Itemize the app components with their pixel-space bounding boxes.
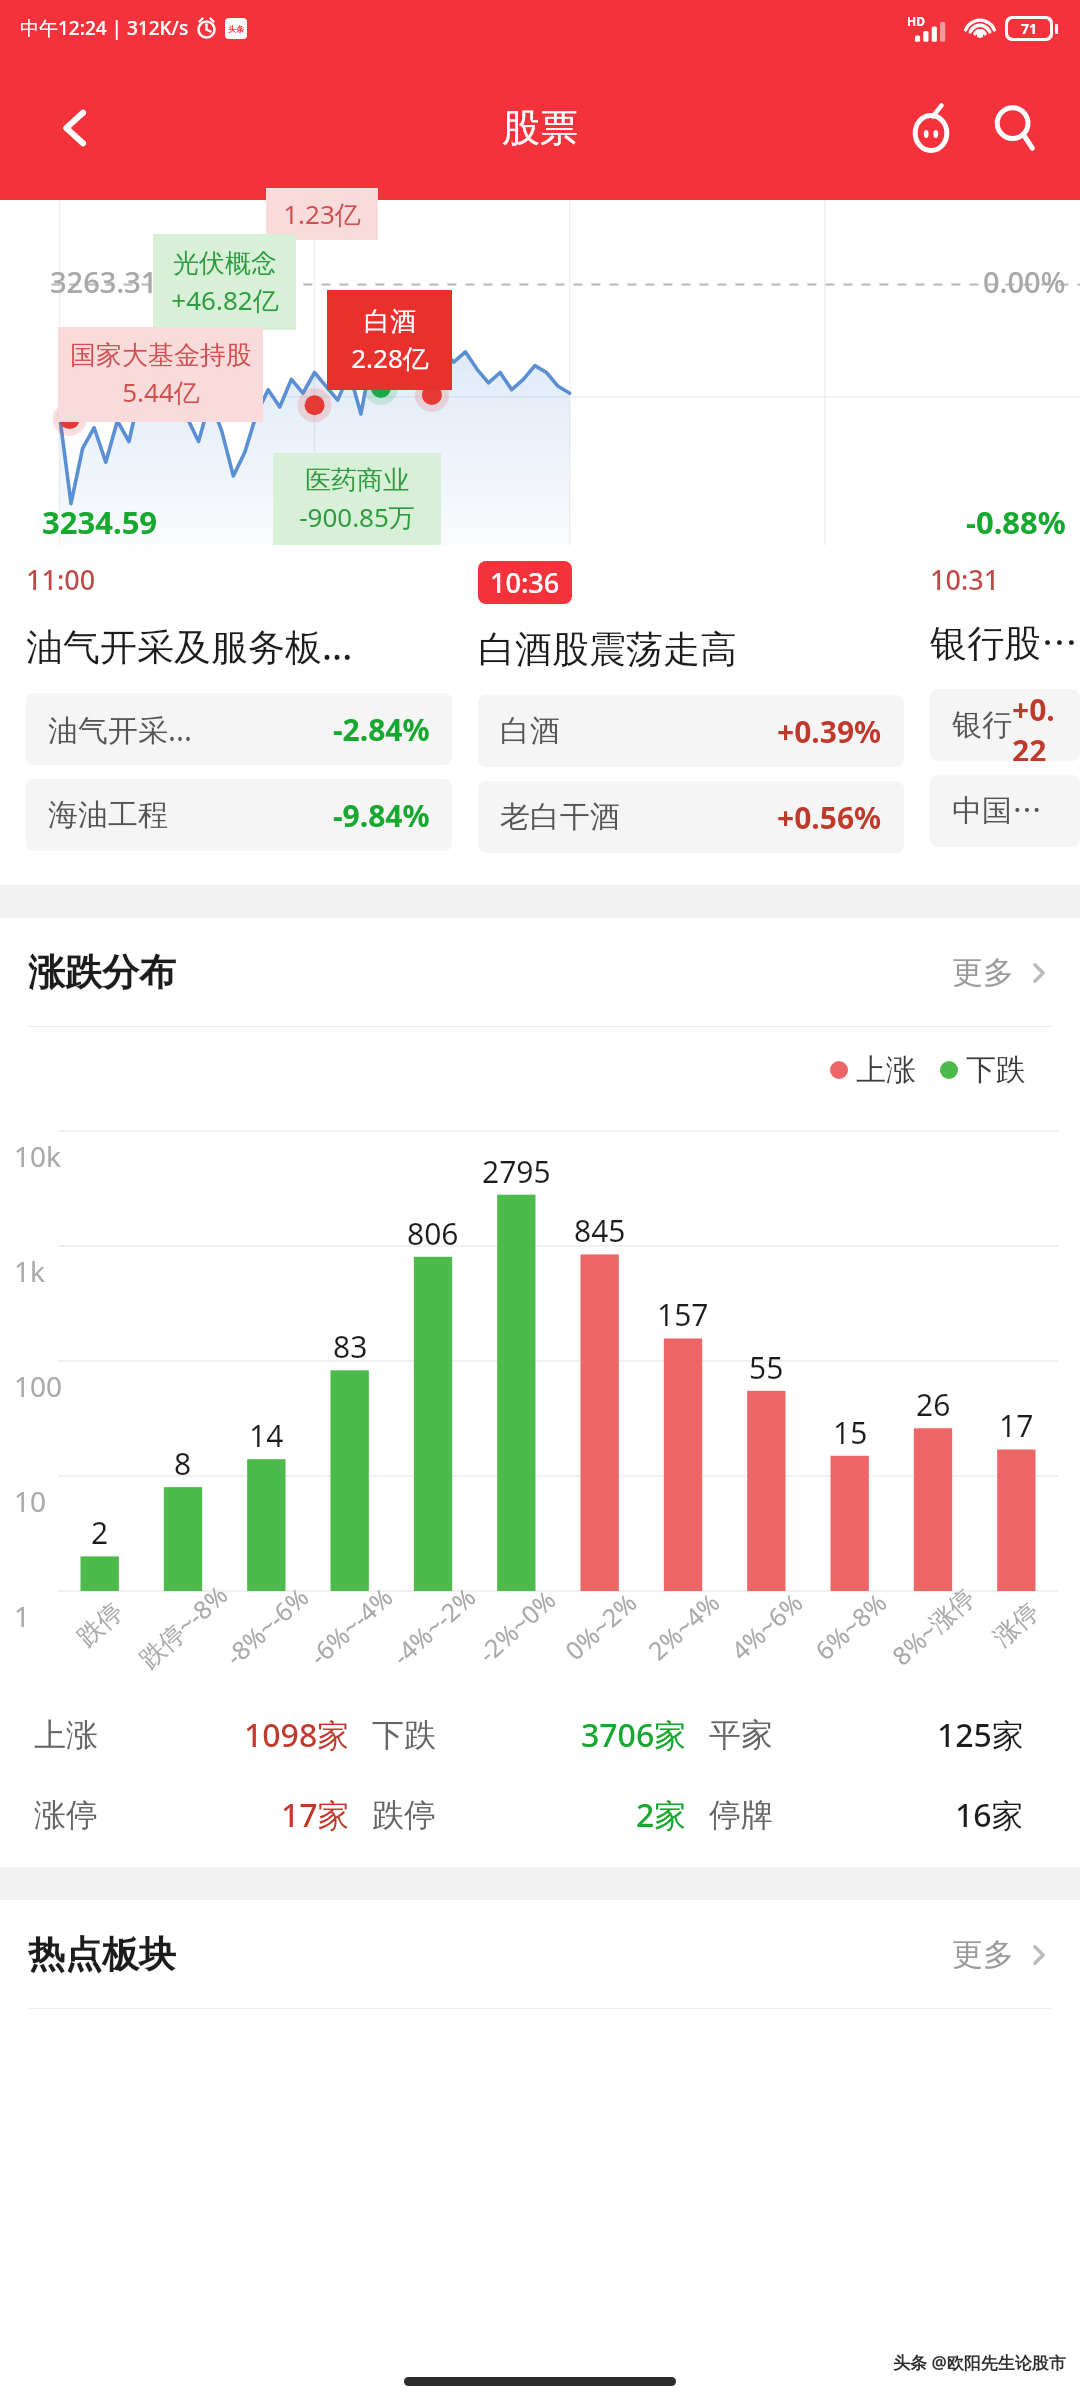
staticText: 3706家 [581,1713,687,1757]
button[interactable]: 老白干酒 [478,781,904,853]
staticText: 26 [916,1384,951,1425]
staticText: 上涨 [34,1715,98,1755]
staticText: 光伏概念 [173,247,277,280]
staticText: 6%~8% [807,1585,893,1667]
staticText: 2家 [636,1793,687,1837]
staticText: 157 [657,1294,709,1335]
staticText: 5.44亿 [122,374,200,410]
staticText: 15 [833,1412,868,1453]
staticText: HD [907,13,925,29]
button[interactable]: 海油工程 [26,779,452,851]
staticText: 2 [91,1512,109,1553]
button[interactable]: 3263.31 [0,200,1080,545]
staticText: 1.23亿 [283,196,361,232]
staticText: 2795 [482,1151,551,1192]
staticText: 医药商业 [305,464,409,497]
button[interactable]: 中国银行 [930,775,1080,847]
staticText: -6%~-4% [302,1580,399,1672]
staticText: 跌停 [372,1795,436,1835]
staticText: 17 [999,1405,1034,1446]
staticText: 涨跌分布 [28,949,176,996]
staticText: 0.00% [983,262,1066,301]
staticText: 银行股异动拉升 [930,620,1080,667]
staticText: 125家 [937,1713,1024,1757]
staticText: 更多 [952,953,1014,992]
staticText: 71 [1021,19,1038,38]
staticText: 油气开采及服务板... [26,620,353,671]
button[interactable]: Search [976,89,1054,167]
button[interactable]: 热点板块 [0,1900,1080,2008]
staticText: 停牌 [709,1795,773,1835]
staticText: 2.28亿 [351,340,429,376]
staticText: 806 [407,1213,459,1254]
staticText: +0.56% [777,797,882,838]
staticText: 白酒 [364,305,416,338]
staticText: 头条 [228,24,244,34]
staticText: 更多 [952,1935,1014,1974]
staticText: 油气开采... [48,709,193,750]
staticText: 3234.59 [42,501,158,543]
button[interactable]: Assistant [892,89,970,167]
staticText: -0.88% [966,501,1066,543]
staticText: -8%~-6% [218,1580,315,1672]
staticText: +46.82亿 [171,282,279,318]
staticText: 8%~涨停 [884,1580,982,1672]
staticText: 中国银行 [952,792,1058,830]
staticText: 海油工程 [48,796,168,834]
button[interactable]: 油气开采... [26,693,452,765]
staticText: 100 [14,1367,63,1405]
button[interactable]: 10:31 [930,545,1080,847]
staticText: -2.84% [333,709,430,750]
staticText: 中午12:24 | 312K/s [20,15,189,41]
staticText: 国家大基金持股 [70,339,252,372]
staticText: 平家 [709,1715,773,1755]
staticText: 845 [574,1210,626,1251]
staticText: 10:31 [930,561,1000,598]
staticText: +0.39% [777,711,882,752]
staticText: 1 [14,1597,31,1635]
button[interactable]: 涨跌分布 [0,918,1080,1026]
staticText: 白酒 [500,712,560,750]
staticText: 老白干酒 [500,798,620,836]
staticText: 1k [14,1252,45,1290]
staticText: -9.84% [333,795,430,836]
staticText: 16家 [955,1793,1024,1837]
staticText: 下跌 [966,1051,1026,1089]
button[interactable]: 银行 [930,689,1080,761]
staticText: 55 [749,1347,784,1388]
staticText: 10:36 [490,564,560,601]
staticText: 8 [174,1443,192,1484]
staticText: 跌停~-8% [131,1577,234,1675]
staticText: 10k [14,1137,61,1175]
staticText: -900.85万 [299,499,415,535]
staticText: 83 [333,1326,368,1367]
button[interactable]: 10:36 [478,545,904,853]
staticText: 银行 [952,706,1012,744]
staticText: 2%~4% [640,1585,726,1667]
staticText: 17家 [281,1793,350,1837]
staticText: 上涨 [856,1051,916,1089]
staticText: 10 [14,1482,47,1520]
staticText: 4%~6% [723,1585,809,1667]
button[interactable]: 白酒 [478,695,904,767]
button[interactable]: 11:00 [26,545,452,851]
staticText: -2%~0% [471,1582,562,1670]
staticText: 3263.31 [50,262,158,301]
staticText: 14 [249,1415,284,1456]
staticText: 11:00 [26,561,96,598]
staticText: 白酒股震荡走高 [478,626,737,673]
staticText: 涨停 [34,1795,98,1835]
staticText: 下跌 [372,1715,436,1755]
staticText: 1098家 [244,1713,350,1757]
staticText: 跌停 [71,1596,129,1653]
button[interactable]: Back [42,95,108,161]
staticText: +0.22% [1012,689,1058,761]
staticText: -4%~-2% [385,1580,482,1672]
staticText: 0%~2% [557,1585,643,1667]
staticText: 股票 [502,104,578,152]
staticText: 热点板块 [28,1931,176,1978]
staticText: 涨停 [987,1596,1045,1653]
staticText: 头条 @欧阳先生论股市 [893,2351,1066,2374]
